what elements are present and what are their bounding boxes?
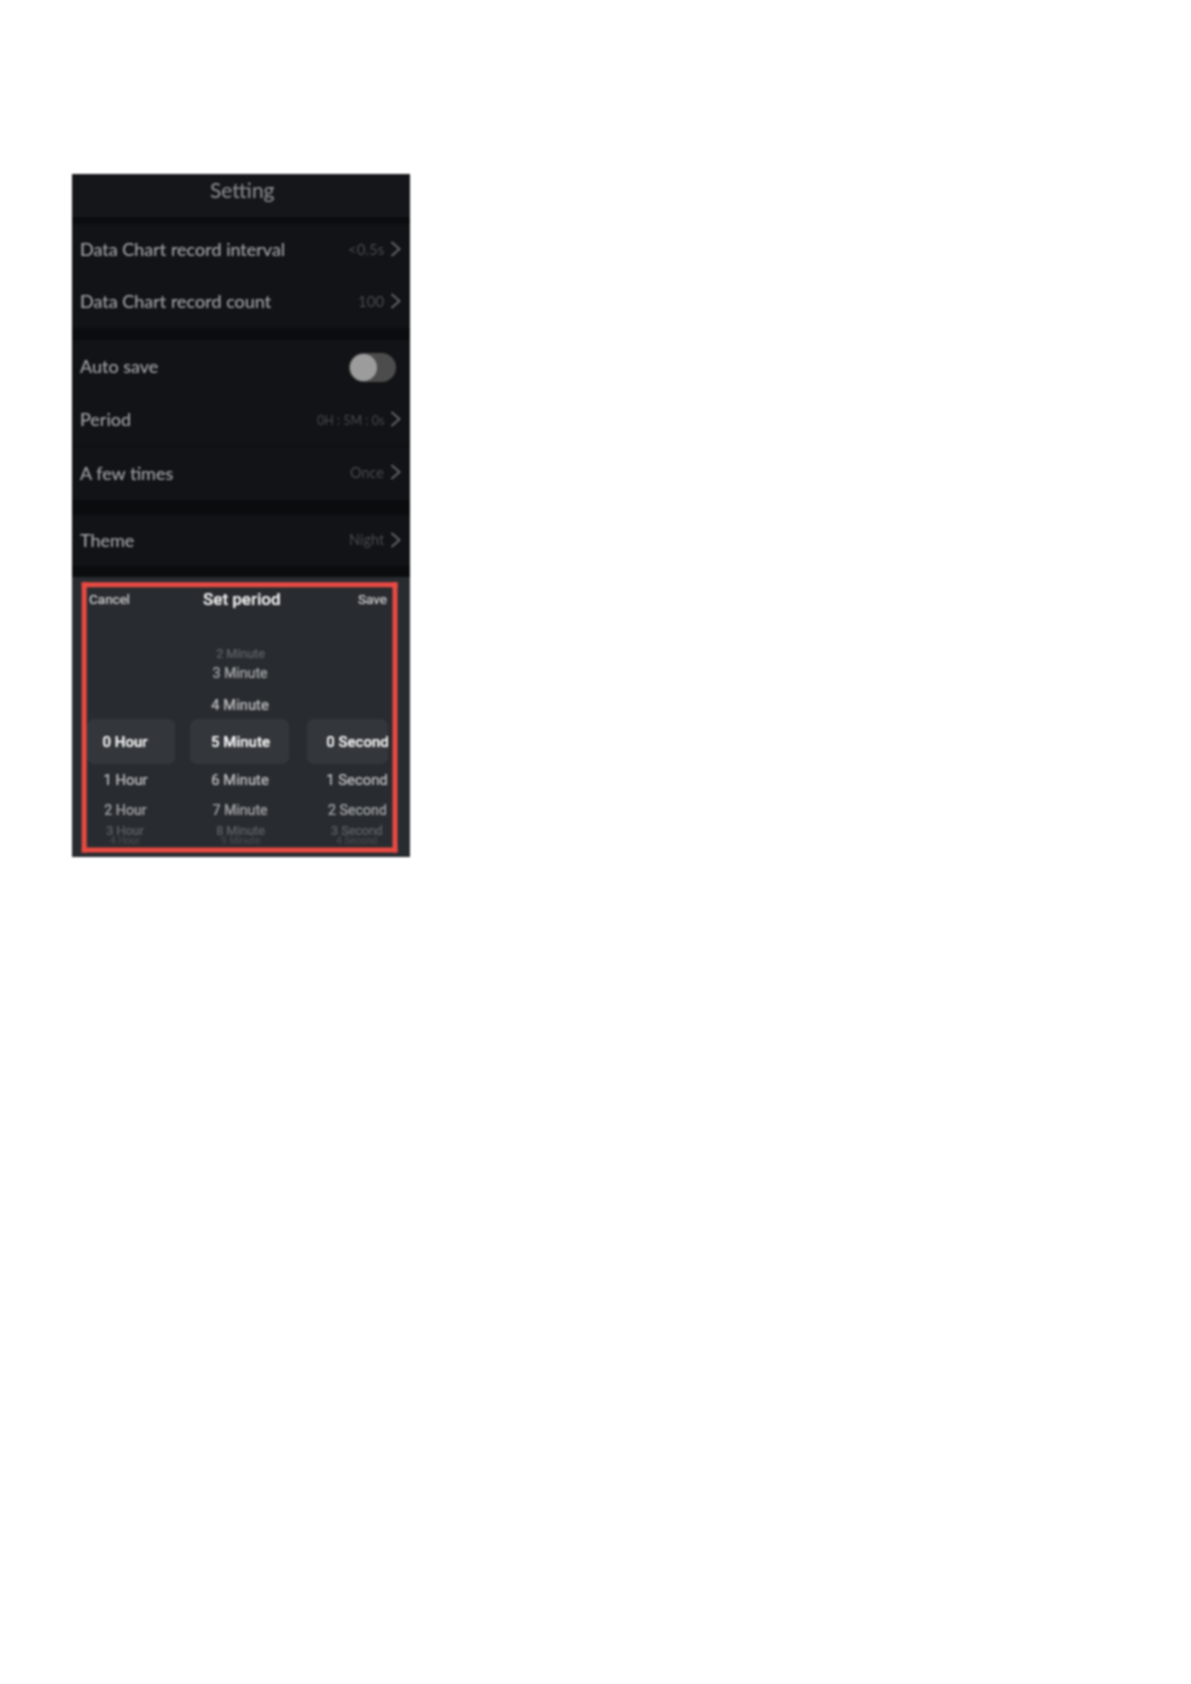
- staticText: Cancel: [89, 591, 131, 607]
- button[interactable]: 7 Minute: [187, 796, 293, 824]
- button[interactable]: 0 Second: [304, 728, 410, 756]
- staticText: Once: [350, 464, 385, 481]
- button[interactable]: 2 Hour: [72, 796, 178, 824]
- staticText: 2 Hour: [104, 802, 147, 819]
- staticText: Period: [80, 408, 131, 430]
- staticText: 4 Minute: [211, 696, 269, 713]
- staticText: 4 Second: [336, 835, 378, 847]
- staticText: 9 Minute: [221, 835, 260, 847]
- staticText: 7 Minute: [212, 802, 268, 819]
- staticText: 6 Minute: [211, 771, 269, 788]
- button[interactable]: 8 Minute: [187, 816, 293, 844]
- button[interactable]: 1 Second: [304, 765, 410, 793]
- staticText: 5 Minute: [211, 733, 270, 751]
- button[interactable]: 9 Minute: [187, 827, 293, 855]
- button[interactable]: 3 Minute: [187, 659, 293, 687]
- staticText: Auto save: [80, 355, 159, 377]
- staticText: 3 Minute: [212, 665, 268, 682]
- button[interactable]: A few times: [72, 447, 410, 500]
- button[interactable]: 2 Second: [304, 796, 410, 824]
- button[interactable]: 4 Hour: [72, 827, 178, 855]
- button[interactable]: Auto save: [349, 353, 396, 382]
- staticText: 1 Hour: [103, 771, 148, 788]
- staticText: Set period: [203, 589, 281, 609]
- staticText: 0H : 5M : 0s: [317, 413, 385, 428]
- button[interactable]: 0 Hour: [72, 728, 178, 756]
- staticText: 3 Hour: [106, 823, 144, 838]
- button[interactable]: 3 Hour: [72, 816, 178, 844]
- staticText: 100: [358, 292, 385, 310]
- button[interactable]: 1 Hour: [72, 765, 178, 793]
- staticText: 4 Hour: [110, 835, 140, 847]
- staticText: 2 Second: [328, 802, 387, 819]
- staticText: 3 Second: [331, 823, 383, 838]
- staticText: Night: [349, 531, 385, 548]
- button[interactable]: Auto save: [72, 340, 410, 393]
- button[interactable]: 4 Minute: [187, 690, 293, 718]
- staticText: 1 Second: [326, 771, 388, 788]
- button[interactable]: 2 Minute: [187, 639, 293, 667]
- staticText: Setting: [210, 177, 275, 202]
- staticText: Data Chart record interval: [80, 238, 286, 260]
- staticText: A few times: [80, 462, 174, 484]
- button[interactable]: Theme: [72, 515, 410, 566]
- button[interactable]: 6 Minute: [187, 765, 293, 793]
- button[interactable]: 5 Minute: [187, 728, 293, 756]
- button[interactable]: Data Chart record count: [72, 276, 410, 328]
- staticText: Save: [358, 591, 387, 607]
- button[interactable]: Cancel: [82, 586, 138, 612]
- button[interactable]: Data Chart record interval: [72, 224, 410, 276]
- staticText: Theme: [80, 529, 135, 551]
- button[interactable]: 4 Second: [304, 827, 410, 855]
- staticText: 2 Minute: [216, 646, 265, 661]
- button[interactable]: 3 Second: [304, 816, 410, 844]
- staticText: 8 Minute: [216, 823, 265, 838]
- staticText: <0.5s: [348, 240, 385, 258]
- staticText: 0 Hour: [102, 733, 148, 751]
- staticText: 0 Second: [326, 733, 389, 751]
- button[interactable]: Period: [72, 393, 410, 446]
- staticText: Data Chart record count: [80, 290, 272, 312]
- button[interactable]: Save: [348, 586, 396, 612]
